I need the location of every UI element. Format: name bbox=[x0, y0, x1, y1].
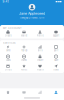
button[interactable]: Orders bbox=[0, 29, 16, 37]
button[interactable]: Cards bbox=[16, 88, 32, 96]
staticText: Support bbox=[52, 34, 59, 37]
button[interactable]: Split bbox=[48, 44, 64, 52]
staticText: SERVICES bbox=[3, 41, 16, 44]
staticText: Bills bbox=[37, 49, 42, 52]
staticText: jane@appleseed.com bbox=[20, 16, 44, 19]
staticText: Offers bbox=[4, 68, 11, 71]
staticText: MY ACCOUNT bbox=[3, 27, 22, 29]
staticText: Points bbox=[21, 68, 27, 71]
staticText: 9:41 bbox=[2, 0, 8, 3]
button[interactable]: Insure bbox=[32, 54, 48, 62]
staticText: Insure bbox=[37, 59, 43, 61]
staticText: Save bbox=[54, 59, 58, 61]
staticText: Health bbox=[36, 68, 43, 71]
staticText: Loans bbox=[5, 59, 10, 61]
staticText: Profile bbox=[36, 34, 43, 37]
staticText: Jane Appleseed bbox=[19, 11, 45, 16]
button[interactable]: Top up bbox=[16, 44, 32, 52]
button[interactable]: Wallet bbox=[16, 29, 32, 37]
staticText: Orders bbox=[4, 34, 11, 37]
button[interactable]: Send bbox=[0, 44, 16, 52]
button[interactable]: Offers bbox=[0, 64, 16, 72]
button[interactable]: Bills bbox=[32, 44, 48, 52]
button[interactable]: Profile bbox=[48, 88, 64, 96]
staticText: Invest bbox=[21, 59, 27, 61]
button[interactable]: Home bbox=[0, 88, 16, 96]
button[interactable]: Invest bbox=[16, 54, 32, 62]
staticText: Wallet bbox=[20, 34, 27, 37]
staticText: Split bbox=[53, 49, 58, 52]
button[interactable]: Support bbox=[48, 29, 64, 37]
button[interactable]: Points bbox=[16, 64, 32, 72]
button[interactable]: Loans bbox=[0, 54, 16, 62]
button[interactable]: Health bbox=[32, 64, 48, 72]
staticText: Send bbox=[6, 49, 10, 52]
staticText: Top up bbox=[21, 49, 27, 52]
button[interactable]: Travel bbox=[48, 64, 64, 72]
button[interactable]: Activity bbox=[32, 88, 48, 96]
button[interactable]: Save bbox=[48, 54, 64, 62]
button[interactable]: Profile bbox=[32, 29, 48, 37]
staticText: Travel bbox=[53, 68, 59, 71]
